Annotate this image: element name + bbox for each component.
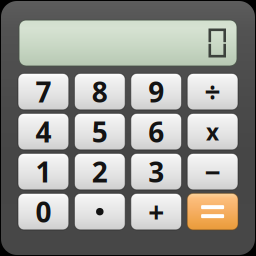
staticText: 0 bbox=[35, 193, 51, 230]
button[interactable]: 4 bbox=[18, 113, 69, 150]
staticText: + bbox=[148, 193, 164, 230]
button[interactable]: 5 bbox=[74, 113, 125, 150]
staticText: − bbox=[205, 153, 221, 190]
staticText: 3 bbox=[148, 153, 164, 190]
button[interactable]: Decimal point bbox=[74, 193, 125, 230]
staticText: 6 bbox=[148, 113, 164, 150]
button[interactable]: 1 bbox=[18, 153, 69, 190]
staticText: 4 bbox=[35, 113, 51, 150]
button[interactable]: 9 bbox=[131, 73, 182, 110]
button[interactable]: Equals bbox=[187, 193, 238, 230]
button[interactable]: 2 bbox=[74, 153, 125, 190]
button[interactable]: x bbox=[187, 113, 238, 150]
staticText: ÷ bbox=[205, 73, 221, 110]
staticText: 5 bbox=[92, 113, 108, 150]
staticText: 8 bbox=[92, 73, 108, 110]
button[interactable]: 8 bbox=[74, 73, 125, 110]
button[interactable]: 3 bbox=[131, 153, 182, 190]
staticText: x bbox=[206, 117, 219, 147]
staticText: 2 bbox=[92, 153, 108, 190]
button[interactable]: 6 bbox=[131, 113, 182, 150]
staticText: 1 bbox=[35, 153, 51, 190]
button[interactable]: ÷ bbox=[187, 73, 238, 110]
button[interactable]: − bbox=[187, 153, 238, 190]
button[interactable]: 7 bbox=[18, 73, 69, 110]
button[interactable]: + bbox=[131, 193, 182, 230]
staticText: 7 bbox=[35, 73, 51, 110]
button[interactable]: 0 bbox=[18, 193, 69, 230]
staticText: 9 bbox=[148, 73, 164, 110]
